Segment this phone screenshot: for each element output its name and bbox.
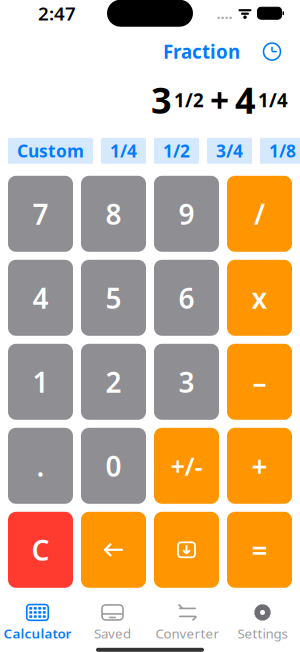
button[interactable]: Plus minus bbox=[154, 428, 219, 504]
staticText: Saved bbox=[94, 624, 131, 642]
button[interactable]: Converter bbox=[150, 597, 225, 642]
staticText: + bbox=[251, 447, 267, 484]
button[interactable]: 9 bbox=[154, 176, 219, 252]
staticText: 5 bbox=[105, 279, 121, 316]
button[interactable]: Fraction bbox=[163, 39, 240, 64]
staticText: Calculator bbox=[3, 624, 71, 642]
button[interactable]: 6 bbox=[154, 260, 219, 336]
staticText: 1/2 bbox=[174, 87, 204, 112]
button[interactable]: Settings bbox=[225, 597, 300, 642]
staticText: 4 bbox=[235, 76, 256, 124]
staticText: Converter bbox=[155, 624, 219, 642]
staticText: 3 bbox=[178, 363, 194, 400]
button[interactable]: 1/8 bbox=[260, 134, 300, 167]
button[interactable]: Multiply bbox=[227, 260, 292, 336]
staticText: . bbox=[36, 447, 44, 484]
button[interactable]: 1 bbox=[8, 344, 73, 420]
staticText: 3/4 bbox=[216, 139, 243, 162]
staticText: 7 bbox=[32, 195, 48, 232]
button[interactable]: Divide bbox=[227, 176, 292, 252]
staticText: 1/8 bbox=[269, 139, 296, 162]
staticText: 8 bbox=[105, 195, 121, 232]
staticText: C bbox=[31, 531, 49, 568]
button[interactable]: Calculator bbox=[0, 597, 75, 642]
button[interactable]: 5 bbox=[81, 260, 146, 336]
staticText: 1/2 bbox=[163, 139, 190, 162]
button[interactable]: 4 bbox=[8, 260, 73, 336]
staticText: Fraction bbox=[163, 39, 240, 64]
button[interactable]: Minus bbox=[227, 344, 292, 420]
button[interactable]: 2 bbox=[81, 344, 146, 420]
button[interactable]: Plus bbox=[227, 428, 292, 504]
button[interactable]: Equals bbox=[227, 512, 292, 588]
button[interactable]: 0 bbox=[81, 428, 146, 504]
button[interactable]: 3/4 bbox=[207, 134, 252, 167]
staticText: 1/4 bbox=[258, 87, 288, 112]
staticText: 3 bbox=[151, 76, 172, 124]
staticText: 4 bbox=[32, 279, 48, 316]
button[interactable]: Saved bbox=[75, 597, 150, 642]
button[interactable]: 3 bbox=[154, 344, 219, 420]
staticText: 1 bbox=[32, 363, 48, 400]
staticText: x bbox=[251, 279, 267, 316]
staticText: / bbox=[254, 195, 265, 232]
staticText: Custom bbox=[17, 139, 84, 162]
staticText: +/- bbox=[170, 449, 202, 483]
staticText: = bbox=[251, 531, 267, 568]
button[interactable]: 8 bbox=[81, 176, 146, 252]
staticText: Settings bbox=[237, 624, 287, 642]
staticText: 9 bbox=[178, 195, 194, 232]
button[interactable]: 7 bbox=[8, 176, 73, 252]
button[interactable]: Clear bbox=[8, 512, 73, 588]
button[interactable]: Backspace bbox=[81, 512, 146, 588]
staticText: 2:47 bbox=[38, 1, 76, 26]
button[interactable]: . bbox=[8, 428, 73, 504]
staticText: 1/4 bbox=[110, 139, 137, 162]
staticText: 6 bbox=[178, 279, 194, 316]
staticText: 2 bbox=[105, 363, 121, 400]
button[interactable]: 1/4 bbox=[101, 134, 146, 167]
staticText: + bbox=[210, 78, 229, 122]
staticText: 0 bbox=[105, 447, 121, 484]
button[interactable]: Custom bbox=[8, 134, 93, 167]
staticText: – bbox=[252, 363, 266, 400]
button[interactable]: History bbox=[240, 42, 282, 62]
staticText: .... bbox=[216, 3, 232, 23]
button[interactable]: 1/2 bbox=[154, 134, 199, 167]
button[interactable]: Save bbox=[154, 512, 219, 588]
